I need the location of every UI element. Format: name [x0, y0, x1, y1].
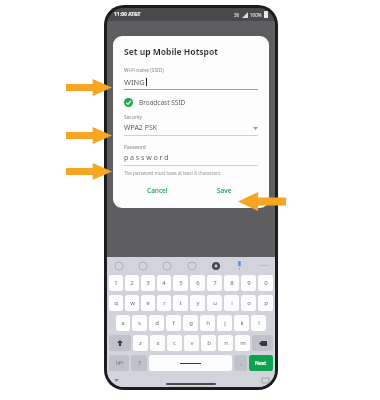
button[interactable]: 1	[109, 275, 123, 291]
staticText: The password must have at least 8 charac…	[124, 170, 222, 176]
button[interactable]: Shift	[109, 335, 131, 351]
button[interactable]: 9	[241, 275, 256, 291]
button[interactable]: c	[167, 335, 182, 351]
button[interactable]: Translate	[186, 260, 197, 271]
staticText: 4	[162, 279, 166, 287]
button[interactable]: a	[116, 315, 130, 331]
button[interactable]: y	[190, 295, 205, 311]
button[interactable]: x	[150, 335, 165, 351]
button[interactable]: 3	[141, 275, 155, 291]
button[interactable]: 1#+	[109, 355, 129, 371]
button[interactable]: h	[200, 315, 215, 331]
button[interactable]: ?	[131, 355, 147, 371]
staticText: 5	[179, 279, 183, 287]
staticText: ?	[138, 359, 141, 367]
button[interactable]: u	[207, 295, 222, 311]
staticText: p a s s w o r d	[124, 153, 169, 163]
button[interactable]: Back	[113, 377, 120, 384]
button[interactable]: g	[183, 315, 198, 331]
button[interactable]: n	[218, 335, 233, 351]
button[interactable]: r	[157, 295, 171, 311]
button[interactable]: GIF	[161, 260, 172, 271]
staticText: k	[240, 319, 244, 327]
staticText: s	[138, 319, 141, 327]
staticText: x	[156, 339, 160, 347]
button[interactable]: j	[217, 315, 232, 331]
staticText: Wi-Fi name (SSID)	[124, 67, 164, 74]
staticText: z	[139, 339, 142, 347]
button[interactable]: f	[166, 315, 181, 331]
button[interactable]: More options	[258, 260, 269, 271]
button[interactable]: Voice input	[234, 260, 245, 271]
button[interactable]: s	[132, 315, 147, 331]
button[interactable]: z	[133, 335, 148, 351]
staticText: Next	[255, 360, 267, 367]
staticText: 1	[114, 279, 118, 287]
staticText: u	[213, 299, 217, 307]
button[interactable]: Space	[149, 355, 232, 371]
button[interactable]: 0	[258, 275, 273, 291]
staticText: y	[196, 299, 200, 307]
staticText: m	[240, 339, 246, 347]
button[interactable]: 6	[190, 275, 205, 291]
button[interactable]: b	[201, 335, 216, 351]
staticText: c	[173, 339, 176, 347]
button[interactable]: Backspace	[252, 335, 273, 351]
button[interactable]: l	[251, 315, 266, 331]
staticText: ,	[240, 359, 242, 367]
button[interactable]: 4	[157, 275, 171, 291]
button[interactable]: 2	[125, 275, 139, 291]
button[interactable]: Next	[249, 355, 273, 371]
button[interactable]: v	[184, 335, 199, 351]
staticText: 3	[146, 279, 150, 287]
staticText: g	[189, 319, 193, 327]
staticText: h	[206, 319, 210, 327]
staticText: 7	[213, 279, 217, 287]
button[interactable]: Hide keyboard	[262, 378, 269, 383]
button[interactable]: i	[224, 295, 239, 311]
staticText: Broadcast SSID	[139, 98, 186, 107]
button[interactable]: Save	[191, 183, 258, 198]
button[interactable]: Settings	[210, 260, 221, 271]
button[interactable]: p a s s w o r d	[124, 153, 258, 166]
staticText: q	[114, 299, 118, 307]
button[interactable]: Broadcast SSID	[124, 98, 186, 107]
button[interactable]: o	[241, 295, 256, 311]
button[interactable]: w	[125, 295, 139, 311]
staticText: Security	[124, 114, 143, 121]
button[interactable]: WING	[124, 77, 258, 90]
button[interactable]: t	[173, 295, 188, 311]
staticText: i	[231, 299, 233, 307]
staticText: Save	[217, 186, 232, 195]
button[interactable]: q	[109, 295, 123, 311]
button[interactable]: k	[234, 315, 249, 331]
button[interactable]: Emoji	[113, 260, 124, 271]
staticText: Set up Mobile Hotspot	[124, 46, 218, 58]
button[interactable]: 7	[207, 275, 222, 291]
staticText: 11:00 AT&T	[114, 11, 141, 18]
button[interactable]: WPA2 PSK	[124, 123, 258, 136]
staticText: Password	[124, 144, 146, 151]
button[interactable]: Cancel	[124, 183, 191, 198]
staticText: a	[121, 319, 125, 327]
staticText: 6	[196, 279, 200, 287]
button[interactable]: d	[149, 315, 164, 331]
button[interactable]: 5	[173, 275, 188, 291]
button[interactable]: p	[258, 295, 273, 311]
button[interactable]: e	[141, 295, 155, 311]
button[interactable]: ,	[234, 355, 247, 371]
staticText: r	[163, 299, 166, 307]
staticText: 8	[230, 279, 234, 287]
staticText: w	[130, 299, 135, 307]
button[interactable]: m	[235, 335, 250, 351]
staticText: 0	[264, 279, 268, 287]
staticText: 36	[234, 12, 240, 18]
staticText: 2	[130, 279, 134, 287]
staticText: n	[224, 339, 228, 347]
button[interactable]: Sticker	[137, 260, 148, 271]
staticText: l	[258, 319, 260, 327]
staticText: d	[155, 319, 159, 327]
staticText: e	[146, 299, 150, 307]
staticText: v	[190, 339, 194, 347]
button[interactable]: 8	[224, 275, 239, 291]
